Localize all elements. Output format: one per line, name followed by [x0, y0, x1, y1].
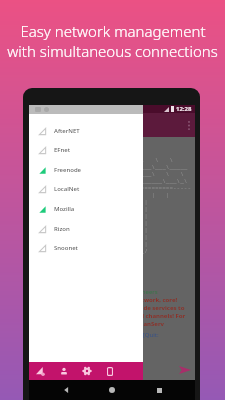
- staticText: AfterNET: [54, 127, 80, 135]
- staticText: | |: [29, 205, 148, 212]
- button[interactable]: EFnet: [29, 142, 143, 158]
- staticText: 12:27 -!- mode/#alkatiir [+o Cheers] by …: [29, 288, 158, 296]
- button[interactable]: Add network: [35, 362, 46, 380]
- staticText: 12:28 -!- core [~core@localhost] has qui…: [29, 331, 159, 339]
- staticText: _\ \ \: [29, 156, 174, 163]
- button[interactable]: Home: [102, 380, 122, 400]
- button[interactable]: AfterNET: [29, 123, 143, 139]
- staticText: | |: [29, 219, 148, 226]
- staticText: |/_|\_\_____\ \ \: [29, 170, 184, 177]
- staticText: \/ |=====______\___\_\: [29, 177, 188, 184]
- staticText: | |: [29, 233, 148, 240]
- staticText: Snoonet: [54, 244, 78, 252]
- staticText: with simultaneous connections: [7, 41, 218, 61]
- staticText: | |: [29, 198, 148, 205]
- button[interactable]: Freenode: [29, 162, 143, 178]
- staticText: 12:27 <Global> We are pleased to provide…: [29, 304, 185, 312]
- button[interactable]: Settings: [81, 362, 92, 380]
- staticText: || |: [29, 212, 148, 219]
- staticText: \__/: [29, 247, 148, 254]
- staticText: ____|\___\___\_____: [29, 163, 188, 170]
- button[interactable]: Send: [177, 363, 193, 377]
- staticText: | |: [29, 240, 148, 247]
- button[interactable]: Account: [58, 362, 69, 380]
- staticText: 12:27 <Global> register nicknames and ch…: [29, 312, 186, 320]
- staticText: /\/|__|_|| | |: [29, 191, 170, 198]
- staticText: \/ ||=============-----: [29, 184, 192, 191]
- staticText: Easy network management: [20, 21, 206, 41]
- staticText: 12:27 <Global> more info type /msg ChanS…: [29, 320, 164, 328]
- button[interactable]: Recents: [149, 380, 169, 400]
- staticText: 12:28: [176, 105, 192, 113]
- staticText: LocalNet: [54, 185, 80, 193]
- staticText: Freenode: [54, 166, 82, 174]
- button[interactable]: Back: [56, 380, 76, 400]
- button[interactable]: More options: [183, 113, 195, 137]
- button[interactable]: Rizon: [29, 221, 143, 237]
- button[interactable]: Mozilla: [29, 201, 143, 217]
- staticText: Rizon: [54, 225, 70, 233]
- button[interactable]: LocalNet: [29, 181, 143, 197]
- staticText: | |: [29, 226, 148, 233]
- staticText: 12:27 <Global> Welcome to our IRC networ…: [29, 296, 178, 304]
- staticText: Mozilla: [54, 205, 75, 213]
- button[interactable]: Device: [104, 362, 115, 380]
- staticText: EFnet: [54, 146, 71, 154]
- button[interactable]: Snoonet: [29, 240, 143, 256]
